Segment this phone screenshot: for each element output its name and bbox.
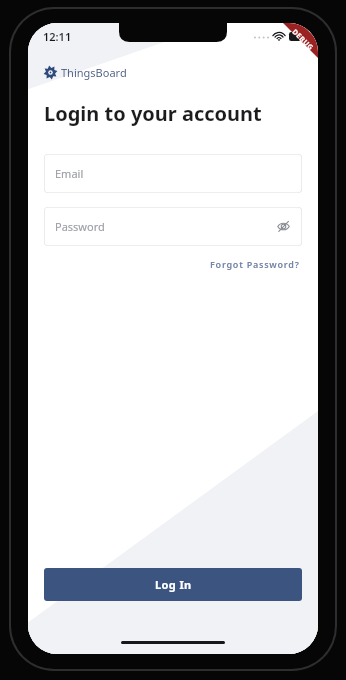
staticText: ThingsBoard — [61, 65, 127, 80]
staticText: Email — [55, 166, 84, 181]
staticText: Password — [55, 219, 105, 234]
staticText: DEBUG — [289, 27, 316, 53]
staticText: Forgot Password? — [210, 258, 300, 270]
button[interactable]: Log In — [44, 568, 302, 601]
staticText: Log In — [155, 577, 192, 592]
button[interactable]: Forgot Password? — [208, 255, 302, 273]
staticText: 12:11 — [43, 29, 72, 44]
staticText: Login to your account — [44, 100, 262, 127]
button[interactable]: Show password — [274, 217, 293, 236]
button[interactable]: Email — [44, 154, 302, 193]
button[interactable]: Password — [44, 207, 302, 246]
